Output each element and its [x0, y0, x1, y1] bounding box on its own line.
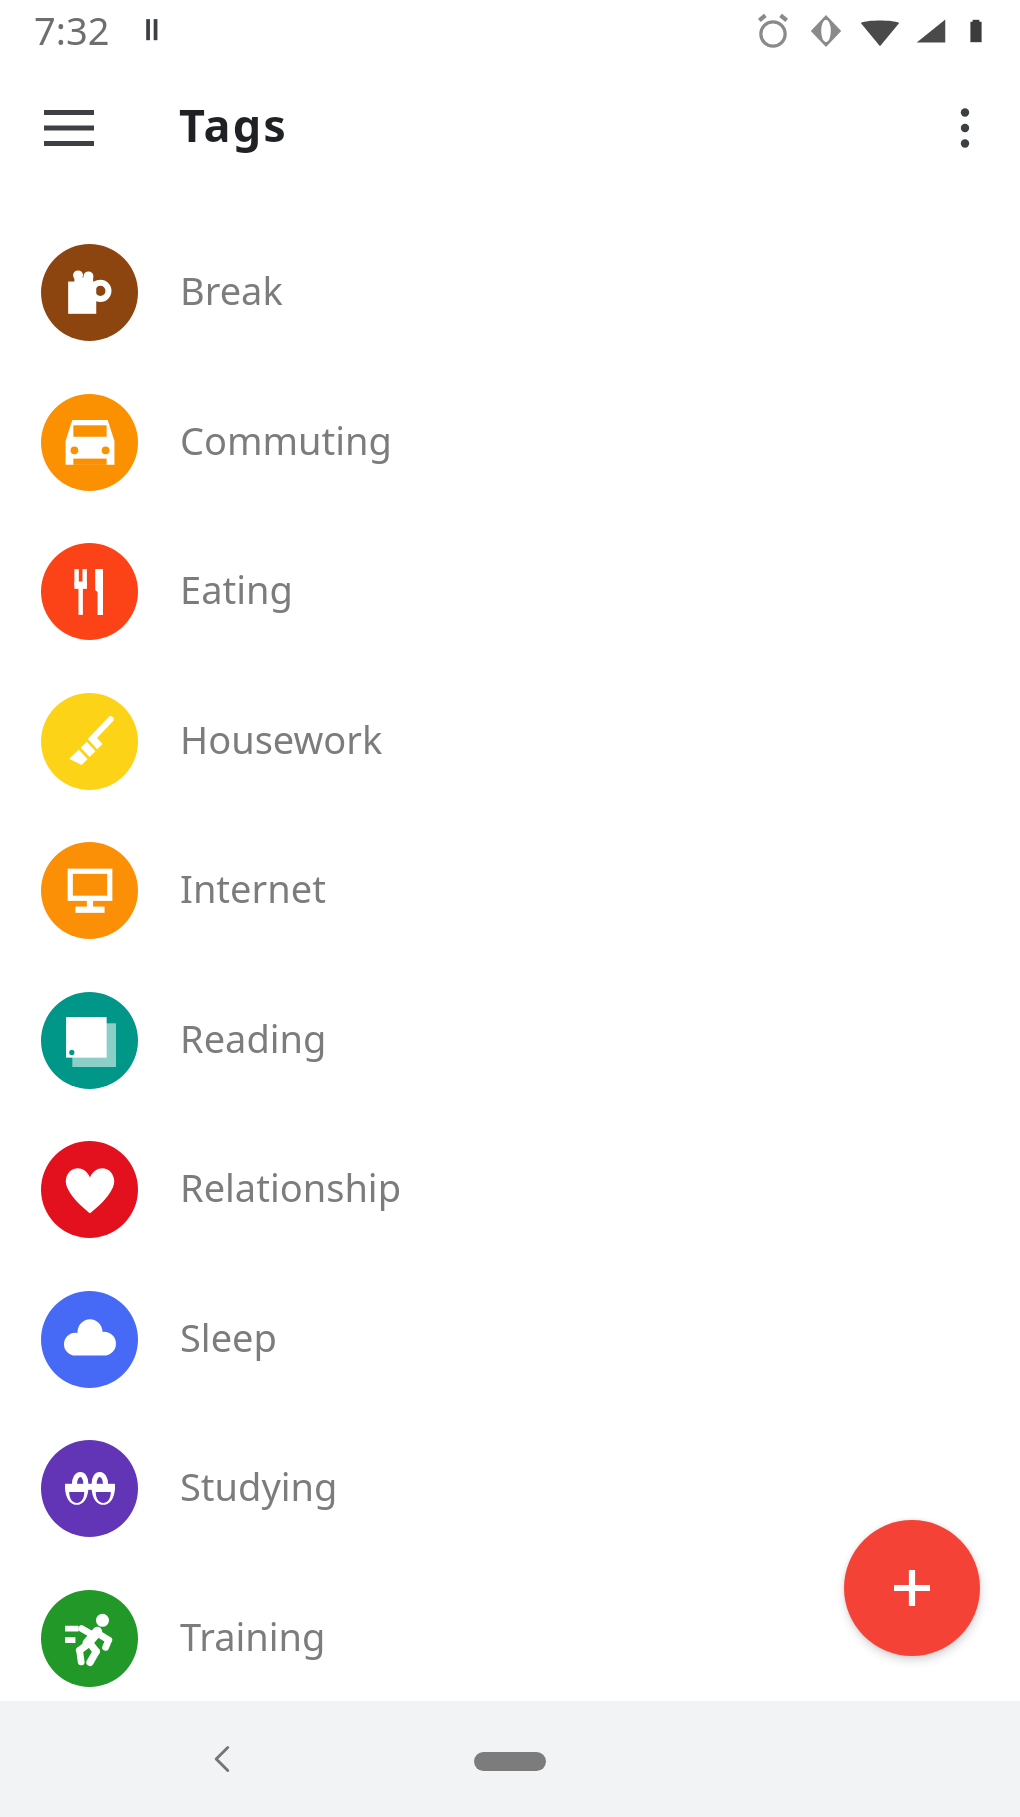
button[interactable]: Training [0, 1564, 1020, 1713]
staticText: Reading [180, 1012, 327, 1064]
button[interactable]: Reading [0, 966, 1020, 1115]
button[interactable]: Housework [0, 667, 1020, 816]
staticText: Eating [180, 563, 293, 615]
staticText: Commuting [180, 414, 392, 466]
button[interactable]: Home [474, 1752, 546, 1771]
staticText: Relationship [180, 1161, 402, 1213]
button[interactable]: Relationship [0, 1115, 1020, 1264]
staticText: Sleep [180, 1311, 277, 1363]
staticText: Tags [179, 94, 289, 155]
staticText: Break [180, 264, 283, 316]
button[interactable]: Studying [0, 1414, 1020, 1563]
button[interactable]: Eating [0, 517, 1020, 666]
staticText: Training [180, 1610, 326, 1662]
button[interactable]: Add tag [844, 1520, 980, 1656]
staticText: 7:32 [34, 4, 110, 56]
button[interactable]: Back [180, 1719, 260, 1799]
staticText: Internet [180, 862, 326, 914]
button[interactable]: Menu [31, 87, 107, 163]
button[interactable]: Sleep [0, 1265, 1020, 1414]
button[interactable]: Internet [0, 816, 1020, 965]
staticText: Studying [180, 1460, 338, 1512]
staticText: Housework [180, 713, 383, 765]
button[interactable]: More options [927, 87, 1003, 163]
button[interactable]: Commuting [0, 368, 1020, 517]
button[interactable]: Break [0, 218, 1020, 367]
